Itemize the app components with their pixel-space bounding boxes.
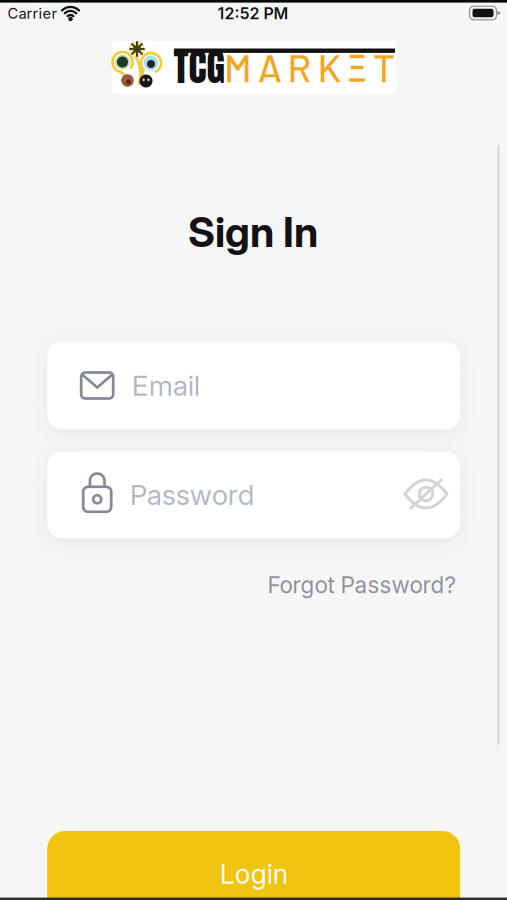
button[interactable]: Password: [47, 451, 460, 538]
button[interactable]: Show password: [399, 474, 453, 514]
staticText: 12:52 PM: [217, 4, 288, 23]
staticText: Login: [220, 858, 288, 890]
button[interactable]: Login: [47, 831, 460, 900]
staticText: TCG: [173, 38, 224, 96]
staticText: K: [317, 44, 341, 90]
staticText: M: [224, 44, 252, 90]
staticText: Forgot Password?: [267, 572, 456, 598]
staticText: Sign In: [188, 208, 318, 256]
staticText: R: [288, 44, 312, 90]
staticText: A: [258, 44, 282, 90]
staticText: Carrier: [7, 5, 57, 22]
staticText: Email: [132, 369, 200, 402]
staticText: Password: [130, 478, 255, 511]
button[interactable]: Forgot Password?: [267, 572, 456, 598]
staticText: Ξ: [347, 40, 367, 93]
staticText: T: [373, 44, 395, 90]
button[interactable]: Email: [47, 341, 460, 429]
